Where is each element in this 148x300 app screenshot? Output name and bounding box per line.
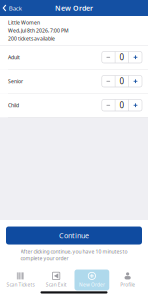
staticText: 0 (119, 100, 124, 111)
staticText: 0 (119, 52, 124, 63)
button[interactable]: Decrease (102, 51, 115, 63)
button[interactable]: Profile (110, 269, 145, 290)
staticText: Scan Exit (46, 281, 67, 288)
staticText: Continue (59, 231, 89, 240)
button[interactable]: Senior (0, 69, 148, 93)
staticText: 0 (119, 76, 124, 87)
button[interactable]: Decrease (102, 75, 115, 87)
button[interactable]: Increase (129, 51, 142, 63)
button[interactable]: Decrease (102, 99, 115, 111)
staticText: Back (9, 4, 22, 12)
button[interactable]: Adult (0, 45, 148, 69)
staticText: New Order (55, 3, 93, 13)
button[interactable]: Continue (6, 226, 142, 244)
button[interactable]: Increase (129, 99, 142, 111)
button[interactable]: New Order (74, 269, 109, 290)
staticText: Senior (8, 78, 23, 85)
staticText: Scan Tickets (6, 281, 34, 288)
staticText: New Order (79, 281, 105, 288)
button[interactable]: Back (0, 1, 26, 15)
staticText: Child (8, 102, 19, 109)
button[interactable]: Scan Exit (39, 269, 74, 290)
staticText: Wed, Jul 8th 2026, 7:00 PM (8, 27, 69, 34)
staticText: Little Women (8, 19, 40, 26)
staticText: Adult (8, 54, 20, 61)
staticText: Profile (120, 281, 135, 288)
button[interactable]: Scan Tickets (3, 269, 38, 290)
staticText: After clicking continue, you have 10 min… (20, 248, 127, 262)
button[interactable]: Increase (129, 75, 142, 87)
staticText: 200 tickets available (8, 35, 55, 42)
button[interactable]: Child (0, 93, 148, 117)
